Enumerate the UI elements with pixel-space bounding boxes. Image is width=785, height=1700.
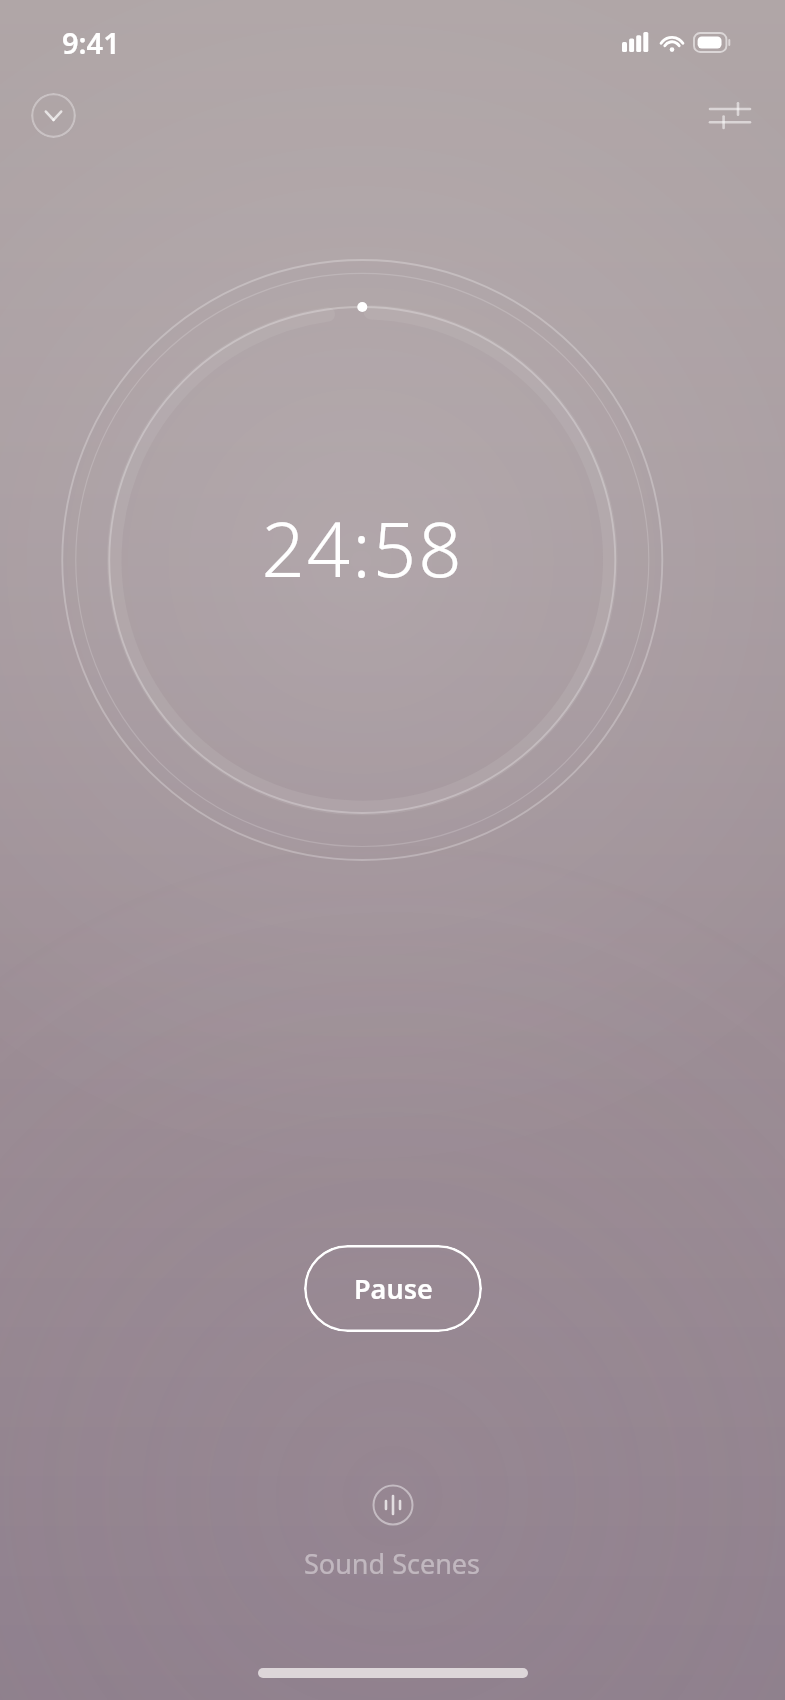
staticText: 9:41 [62, 23, 120, 62]
staticText: Sound Scenes [304, 1545, 481, 1582]
button[interactable]: Sound Scenes [278, 1476, 507, 1590]
button[interactable]: Pause [304, 1245, 482, 1332]
button[interactable]: Settings [704, 89, 756, 141]
button[interactable]: Collapse [31, 93, 76, 138]
staticText: 24:58 [0, 496, 725, 600]
staticText: Pause [354, 1270, 433, 1307]
